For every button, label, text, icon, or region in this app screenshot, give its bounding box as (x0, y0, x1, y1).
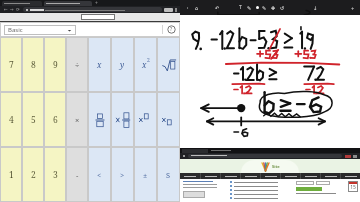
button[interactable]: 3 (44, 147, 66, 202)
button[interactable]: Home (192, 0, 201, 15)
staticText: ↶ (215, 5, 220, 11)
button[interactable]: Highlighter (260, 0, 269, 15)
staticText: T (239, 4, 242, 11)
button[interactable]: > (111, 147, 134, 202)
button[interactable]: Rotate (278, 0, 287, 15)
button[interactable]: - (66, 147, 88, 202)
button[interactable]: 8 (22, 37, 44, 92)
staticText: ⟳ (16, 7, 20, 12)
button[interactable] (221, 173, 240, 179)
button[interactable]: Navigate (15, 6, 21, 13)
staticText: × (75, 115, 80, 125)
button[interactable]: y (111, 37, 134, 92)
staticText: 8 (31, 59, 36, 71)
button[interactable] (281, 173, 300, 179)
staticText: x (142, 59, 147, 70)
button[interactable]: Add (269, 0, 278, 15)
button[interactable]: 7 (0, 37, 22, 92)
staticText: 4 (9, 114, 14, 126)
staticText: ? (170, 26, 173, 33)
button[interactable] (341, 173, 360, 179)
staticText: ÷ (75, 60, 80, 70)
staticText: 1 (9, 169, 14, 181)
staticText: → (10, 7, 14, 12)
button[interactable]: Text tool (236, 0, 245, 15)
button[interactable]: x (134, 37, 157, 92)
button[interactable]: Basic (4, 25, 76, 35)
button[interactable]: 2 (22, 147, 44, 202)
staticText: y (120, 59, 125, 70)
button[interactable] (201, 173, 220, 179)
button[interactable]: Download (311, 0, 320, 15)
staticText: ↓ (313, 5, 318, 11)
button[interactable] (81, 14, 115, 20)
button[interactable]: 5 (22, 92, 44, 147)
button[interactable]: Back (183, 0, 192, 15)
button[interactable]: + (95, 0, 98, 6)
staticText: Basic (8, 26, 23, 34)
button[interactable] (301, 173, 320, 179)
staticText: 3 (53, 169, 58, 181)
button[interactable]: 9 (44, 37, 66, 92)
button[interactable]: Profile (164, 8, 173, 12)
button[interactable] (180, 173, 200, 179)
staticText: x (97, 59, 102, 70)
staticText: ← (4, 7, 8, 12)
button[interactable]: Colour (254, 0, 260, 15)
button[interactable]: ± (134, 147, 157, 202)
staticText: 7 (9, 59, 14, 71)
staticText: ‹ (187, 5, 189, 10)
button[interactable]: S (157, 147, 180, 202)
staticText: ↺ (280, 5, 285, 11)
button[interactable] (2, 1, 42, 6)
button[interactable] (134, 92, 157, 147)
staticText: 5 (31, 114, 36, 126)
button[interactable]: < (88, 147, 111, 202)
button[interactable]: Pen (245, 0, 254, 15)
button[interactable]: Zoom in (348, 0, 357, 15)
staticText: ✎ (247, 5, 252, 11)
button[interactable] (241, 173, 260, 179)
button[interactable] (321, 173, 340, 179)
button[interactable]: Navigate (9, 6, 15, 13)
button[interactable] (188, 154, 342, 158)
button[interactable] (261, 173, 280, 179)
staticText: S (166, 170, 171, 180)
button[interactable]: Navigate (3, 6, 9, 13)
staticText: Site (272, 164, 280, 169)
staticText: > (120, 170, 125, 180)
button[interactable]: Calendar (348, 181, 358, 192)
button[interactable] (157, 92, 180, 147)
staticText: < (97, 170, 102, 180)
button[interactable]: 4 (0, 92, 22, 147)
staticText: 2 (31, 169, 36, 181)
staticText: 6 (53, 114, 58, 126)
button[interactable]: Help (167, 25, 176, 34)
button[interactable]: 1 (0, 147, 22, 202)
staticText: 15 (350, 184, 356, 191)
staticText: ± (143, 170, 148, 180)
staticText: ✎ (262, 5, 267, 11)
staticText: ⌂ (195, 5, 199, 11)
staticText: 9 (53, 59, 58, 71)
button[interactable] (23, 7, 162, 12)
staticText: 2 (147, 57, 150, 64)
button[interactable]: Undo (213, 0, 222, 15)
button[interactable]: ÷ (66, 37, 88, 92)
button[interactable] (157, 37, 180, 92)
staticText: - (76, 170, 79, 180)
button[interactable]: × (66, 92, 88, 147)
button[interactable] (88, 92, 111, 147)
staticText: ✚ (271, 5, 276, 11)
button[interactable]: 6 (44, 92, 66, 147)
button[interactable] (44, 1, 92, 6)
button[interactable]: x (88, 37, 111, 92)
staticText: ＋ (350, 5, 355, 11)
button[interactable] (111, 92, 134, 147)
